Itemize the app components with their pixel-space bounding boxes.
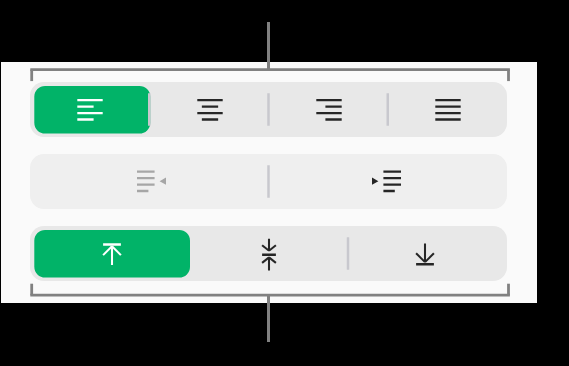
button[interactable]: Align top (30, 226, 189, 281)
button[interactable]: Align left (30, 82, 150, 137)
button[interactable]: Align bottom (348, 226, 507, 281)
button[interactable]: Decrease indent (30, 154, 268, 209)
button[interactable]: Align right (269, 82, 388, 137)
button[interactable]: Align middle (189, 226, 348, 281)
button[interactable]: Justify (388, 82, 507, 137)
button[interactable]: Increase indent (268, 154, 507, 209)
button[interactable]: Align center (150, 82, 269, 137)
